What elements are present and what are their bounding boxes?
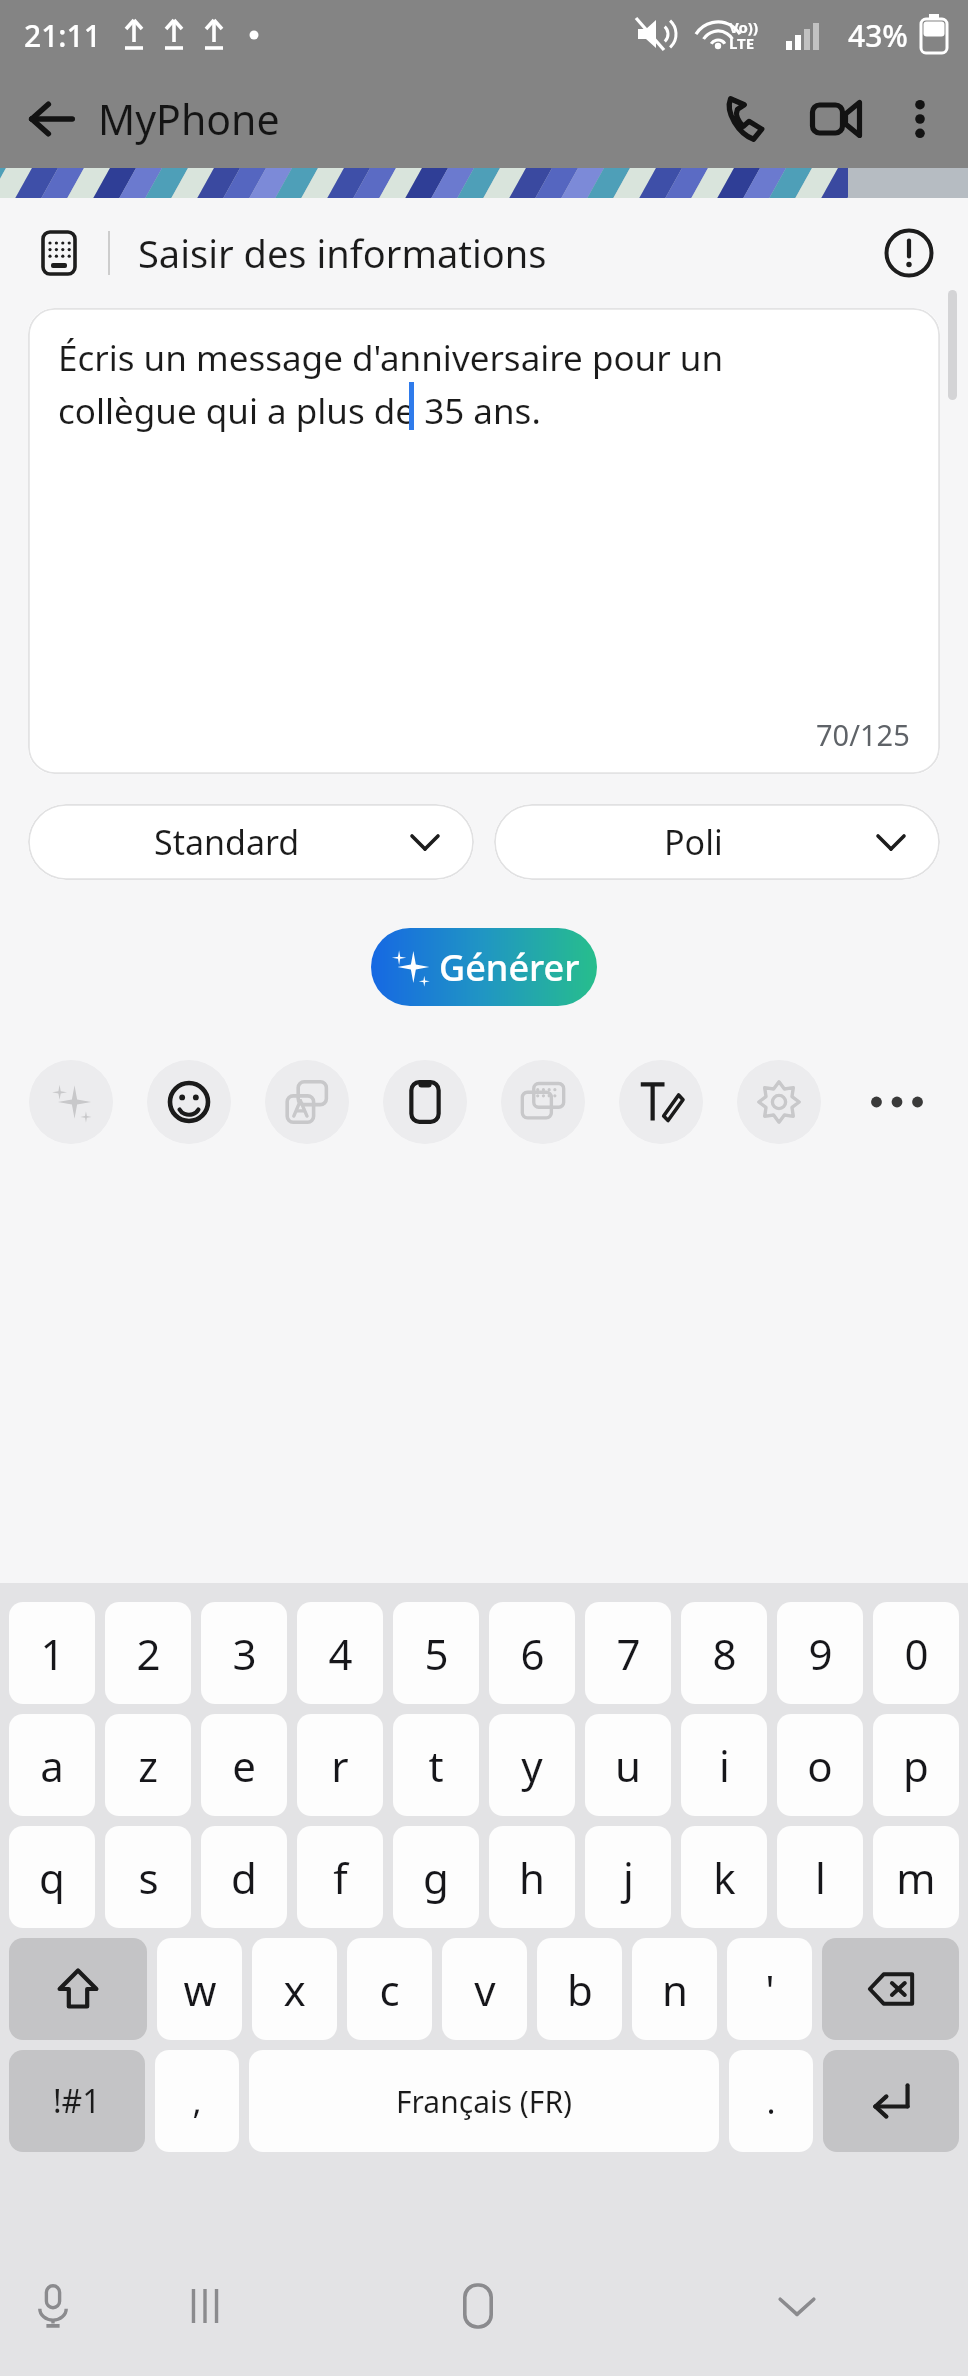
button[interactable]: Shift xyxy=(9,1938,147,2040)
staticText: o xyxy=(807,1737,833,1794)
button[interactable]: Standard xyxy=(28,804,474,880)
staticText: h xyxy=(519,1849,545,1906)
staticText: 6 xyxy=(520,1625,545,1682)
button[interactable]: Settings xyxy=(737,1060,821,1144)
staticText: n xyxy=(662,1961,688,2018)
button[interactable]: Home xyxy=(439,2267,517,2345)
button[interactable]: m xyxy=(873,1826,959,1928)
staticText: Français (FR) xyxy=(396,2081,573,2122)
staticText: !#1 xyxy=(53,2079,101,2123)
button[interactable]: Voice input xyxy=(16,2269,90,2343)
button[interactable]: f xyxy=(297,1826,383,1928)
button[interactable]: Handwriting xyxy=(619,1060,703,1144)
staticText: k xyxy=(713,1849,736,1906)
button[interactable]: AI suggestions xyxy=(29,1060,113,1144)
staticText: 43% xyxy=(848,15,908,56)
button[interactable]: e xyxy=(201,1714,287,1816)
button[interactable]: 5 xyxy=(393,1602,479,1704)
staticText: m xyxy=(896,1849,936,1906)
button[interactable]: t xyxy=(393,1714,479,1816)
button[interactable]: Emoji xyxy=(147,1060,231,1144)
button[interactable]: x xyxy=(252,1938,337,2040)
button[interactable]: Français (FR) xyxy=(249,2050,719,2152)
button[interactable]: b xyxy=(537,1938,622,2040)
button[interactable]: a xyxy=(9,1714,95,1816)
button[interactable]: Call xyxy=(704,75,792,163)
button[interactable]: Keyboard xyxy=(26,220,92,286)
staticText: MyPhone xyxy=(98,91,280,147)
button[interactable]: , xyxy=(155,2050,239,2152)
staticText: j xyxy=(623,1849,634,1906)
staticText: Poli xyxy=(664,819,723,865)
button[interactable]: Enter xyxy=(823,2050,959,2152)
button[interactable]: ' xyxy=(727,1938,812,2040)
staticText: l xyxy=(815,1849,826,1906)
button[interactable]: 4 xyxy=(297,1602,383,1704)
staticText: d xyxy=(231,1849,257,1906)
button[interactable]: . xyxy=(729,2050,813,2152)
button[interactable]: !#1 xyxy=(9,2050,145,2152)
button[interactable]: Translate xyxy=(265,1060,349,1144)
button[interactable]: j xyxy=(585,1826,671,1928)
button[interactable]: v xyxy=(442,1938,527,2040)
button[interactable]: u xyxy=(585,1714,671,1816)
button[interactable]: Générer xyxy=(371,928,597,1006)
button[interactable]: Clipboard xyxy=(383,1060,467,1144)
button[interactable]: 9 xyxy=(777,1602,863,1704)
button[interactable]: y xyxy=(489,1714,575,1816)
button[interactable]: s xyxy=(105,1826,191,1928)
button[interactable]: o xyxy=(777,1714,863,1816)
button[interactable]: Back xyxy=(16,83,88,155)
button[interactable]: h xyxy=(489,1826,575,1928)
button[interactable]: 2 xyxy=(105,1602,191,1704)
button[interactable]: 1 xyxy=(9,1602,95,1704)
staticText: 1 xyxy=(40,1625,65,1682)
staticText: 3 xyxy=(232,1625,257,1682)
button[interactable]: Backspace xyxy=(822,1938,959,2040)
staticText: y xyxy=(521,1737,543,1794)
staticText: i xyxy=(719,1737,730,1794)
staticText: Standard xyxy=(154,819,300,865)
staticText: 9 xyxy=(808,1625,833,1682)
staticText: u xyxy=(615,1737,641,1794)
staticText: p xyxy=(903,1737,929,1794)
staticText: b xyxy=(567,1961,593,2018)
button[interactable]: w xyxy=(157,1938,242,2040)
button[interactable]: i xyxy=(681,1714,767,1816)
button[interactable]: c xyxy=(347,1938,432,2040)
staticText: Vo)) LTE xyxy=(729,17,758,53)
button[interactable]: Information xyxy=(874,218,944,288)
button[interactable]: d xyxy=(201,1826,287,1928)
button[interactable]: Recent apps xyxy=(168,2269,242,2343)
button[interactable]: Poli xyxy=(494,804,940,880)
button[interactable]: r xyxy=(297,1714,383,1816)
button[interactable]: Hide keyboard xyxy=(760,2269,834,2343)
button[interactable]: Video call xyxy=(792,75,880,163)
button[interactable]: More xyxy=(838,1056,956,1148)
staticText: s xyxy=(138,1849,159,1906)
staticText: , xyxy=(192,2078,202,2124)
button[interactable]: 0 xyxy=(873,1602,959,1704)
staticText: Générer xyxy=(439,943,580,992)
button[interactable]: 6 xyxy=(489,1602,575,1704)
staticText: w xyxy=(183,1961,217,2018)
staticText: e xyxy=(232,1737,256,1794)
button[interactable]: p xyxy=(873,1714,959,1816)
button[interactable]: Keyboard modes xyxy=(501,1060,585,1144)
button[interactable]: g xyxy=(393,1826,479,1928)
staticText: Saisir des informations xyxy=(138,227,547,279)
button[interactable]: Écris un message d'anniversaire pour un … xyxy=(28,308,940,774)
button[interactable]: q xyxy=(9,1826,95,1928)
button[interactable]: 3 xyxy=(201,1602,287,1704)
button[interactable]: z xyxy=(105,1714,191,1816)
button[interactable]: More options xyxy=(880,79,960,159)
staticText: 7 xyxy=(616,1625,641,1682)
button[interactable]: l xyxy=(777,1826,863,1928)
staticText: g xyxy=(423,1849,449,1906)
staticText: t xyxy=(428,1737,444,1794)
button[interactable]: n xyxy=(632,1938,717,2040)
button[interactable]: 7 xyxy=(585,1602,671,1704)
button[interactable]: 8 xyxy=(681,1602,767,1704)
staticText: 21:11 xyxy=(24,15,101,56)
button[interactable]: k xyxy=(681,1826,767,1928)
